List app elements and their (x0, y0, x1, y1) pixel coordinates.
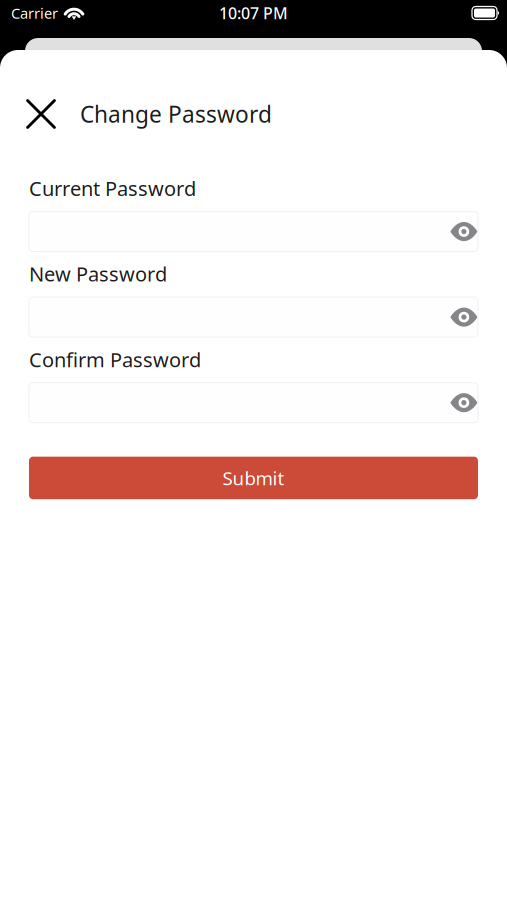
button[interactable]: Close (18, 91, 64, 137)
button[interactable]: Show Current Password (438, 212, 478, 251)
button[interactable]: Show Confirm Password (438, 383, 478, 422)
staticText: Change Password (80, 99, 272, 129)
staticText: 10:07 PM (219, 2, 288, 24)
staticText: Current Password (29, 175, 196, 202)
staticText: Submit (222, 465, 284, 490)
staticText: Carrier (11, 3, 58, 23)
staticText: Confirm Password (29, 346, 201, 373)
button[interactable]: Submit (0, 457, 507, 499)
staticText: New Password (29, 261, 167, 287)
button[interactable]: Show New Password (438, 297, 478, 337)
